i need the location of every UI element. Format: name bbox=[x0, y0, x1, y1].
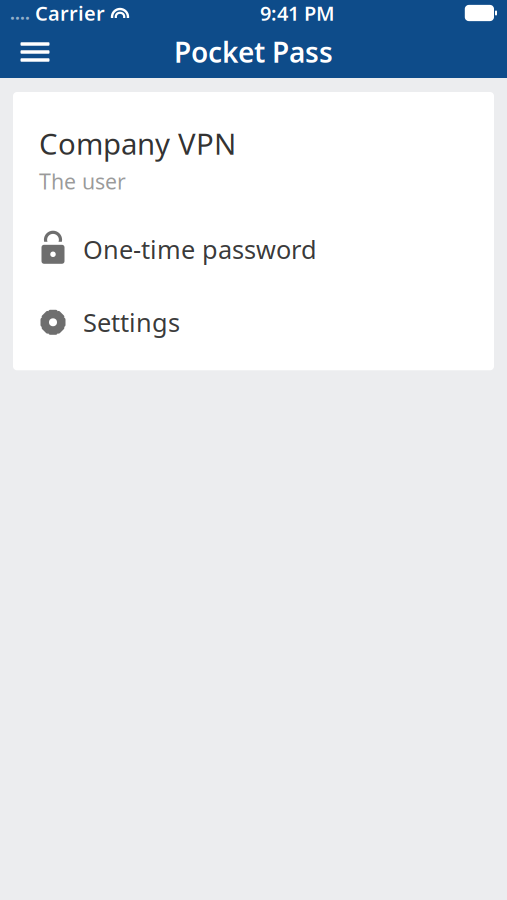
staticText: Company VPN bbox=[39, 124, 236, 163]
staticText: Carrier bbox=[35, 0, 105, 26]
staticText: 9:41 PM bbox=[260, 0, 335, 26]
staticText: The user bbox=[39, 167, 126, 195]
staticText: Pocket Pass bbox=[174, 33, 333, 71]
button[interactable]: Menu bbox=[12, 30, 58, 74]
button[interactable]: Settings bbox=[13, 296, 494, 348]
staticText: One-time password bbox=[83, 232, 317, 266]
staticText: .... bbox=[10, 1, 30, 24]
staticText: Settings bbox=[83, 305, 180, 339]
button[interactable]: One-time password bbox=[13, 223, 494, 275]
